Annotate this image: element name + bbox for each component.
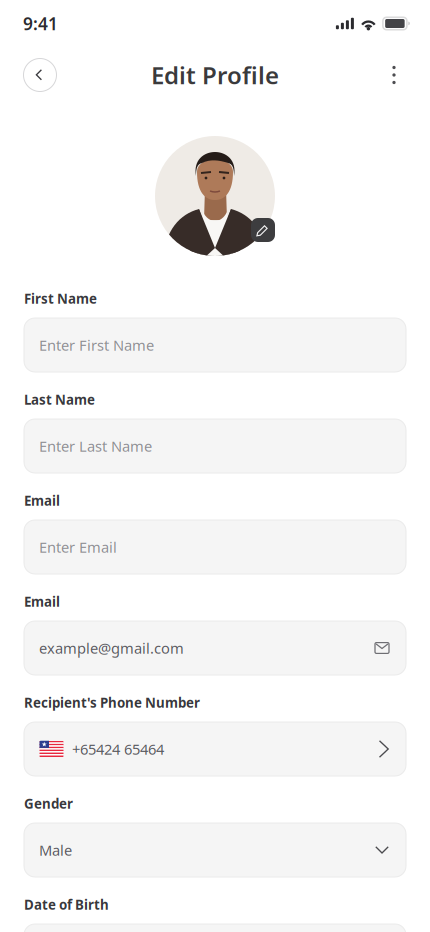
staticText: Gender: [24, 795, 73, 812]
staticText: Email: [24, 593, 60, 610]
staticText: Male: [39, 840, 72, 860]
button[interactable]: example@gmail.com: [24, 621, 406, 675]
button[interactable]: More options: [377, 55, 411, 95]
staticText: Enter First Name: [39, 335, 154, 355]
button[interactable]: Male: [24, 823, 406, 877]
button[interactable]: +65424 65464: [24, 722, 406, 776]
staticText: +65424 65464: [72, 739, 164, 759]
staticText: Recipient's Phone Number: [24, 694, 200, 711]
staticText: Enter Email: [39, 537, 117, 557]
button[interactable]: Enter First Name: [24, 318, 406, 372]
staticText: Date of Birth: [24, 896, 109, 913]
staticText: First Name: [24, 290, 97, 307]
staticText: Enter Last Name: [39, 436, 152, 456]
staticText: Last Name: [24, 391, 95, 408]
button[interactable]: Enter Last Name: [24, 419, 406, 473]
staticText: Email: [24, 492, 60, 509]
staticText: 9:41: [23, 12, 58, 35]
staticText: Edit Profile: [151, 59, 279, 91]
button[interactable]: Enter Email: [24, 520, 406, 574]
staticText: example@gmail.com: [39, 638, 184, 658]
button[interactable]: Change photo: [251, 218, 275, 242]
button[interactable]: Back: [20, 55, 60, 95]
